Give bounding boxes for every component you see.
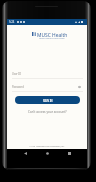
staticText: v 1.9.9 Copyright 2020 Foundation, Inc.: [29, 145, 65, 148]
staticText: Medical University of South Carolina: [39, 37, 65, 39]
button[interactable]: Back: [21, 149, 29, 157]
staticText: User ID: [12, 72, 22, 76]
button[interactable]: User ID: [12, 71, 83, 79]
button[interactable]: Can't access your account?: [28, 110, 67, 114]
staticText: 5:24: [9, 20, 15, 24]
staticText: MUSC Health: [37, 32, 68, 39]
button[interactable]: Home: [43, 149, 51, 157]
button[interactable]: SIGN IN: [15, 96, 80, 104]
staticText: SIGN IN: [43, 99, 53, 102]
button[interactable]: Password: [12, 84, 83, 92]
staticText: Password: [12, 85, 24, 89]
other: Show password: [78, 86, 81, 88]
button[interactable]: Recents: [65, 149, 73, 157]
